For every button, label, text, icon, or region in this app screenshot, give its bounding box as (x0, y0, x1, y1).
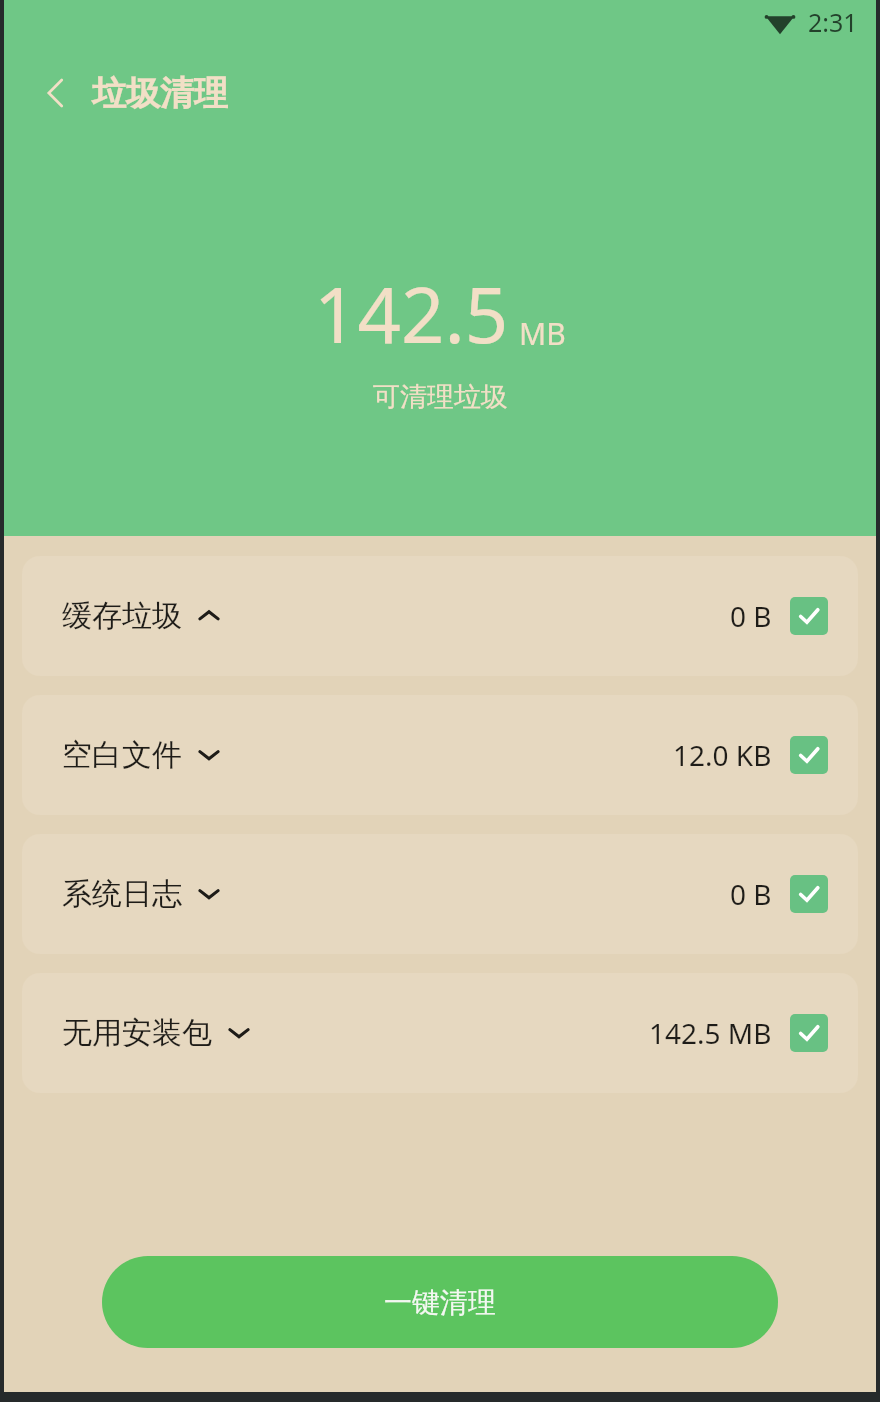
button[interactable]: Select 系统日志 (790, 875, 828, 913)
button[interactable]: Select 缓存垃圾 (790, 597, 828, 635)
button[interactable]: Select 空白文件 (790, 736, 828, 774)
staticText: 2:31 (808, 5, 858, 39)
staticText: 垃圾清理 (92, 72, 228, 115)
staticText: 无用安装包 (62, 1014, 212, 1052)
button[interactable]: Back (30, 67, 82, 119)
button[interactable]: 一键清理 (102, 1256, 778, 1348)
staticText: 缓存垃圾 (62, 597, 182, 635)
staticText: 142.5 MB (649, 1014, 772, 1052)
button[interactable]: 系统日志 (22, 834, 858, 954)
button[interactable]: 缓存垃圾 (22, 556, 858, 676)
button[interactable]: 空白文件 (22, 695, 858, 815)
staticText: 系统日志 (62, 875, 182, 913)
staticText: MB (519, 313, 566, 354)
staticText: 0 B (730, 875, 772, 913)
staticText: 12.0 KB (673, 736, 772, 774)
staticText: 142.5 (314, 262, 509, 366)
button[interactable]: Select 无用安装包 (790, 1014, 828, 1052)
staticText: 可清理垃圾 (373, 380, 508, 414)
staticText: 空白文件 (62, 736, 182, 774)
staticText: 一键清理 (384, 1285, 496, 1320)
button[interactable]: 无用安装包 (22, 973, 858, 1093)
staticText: 0 B (730, 597, 772, 635)
